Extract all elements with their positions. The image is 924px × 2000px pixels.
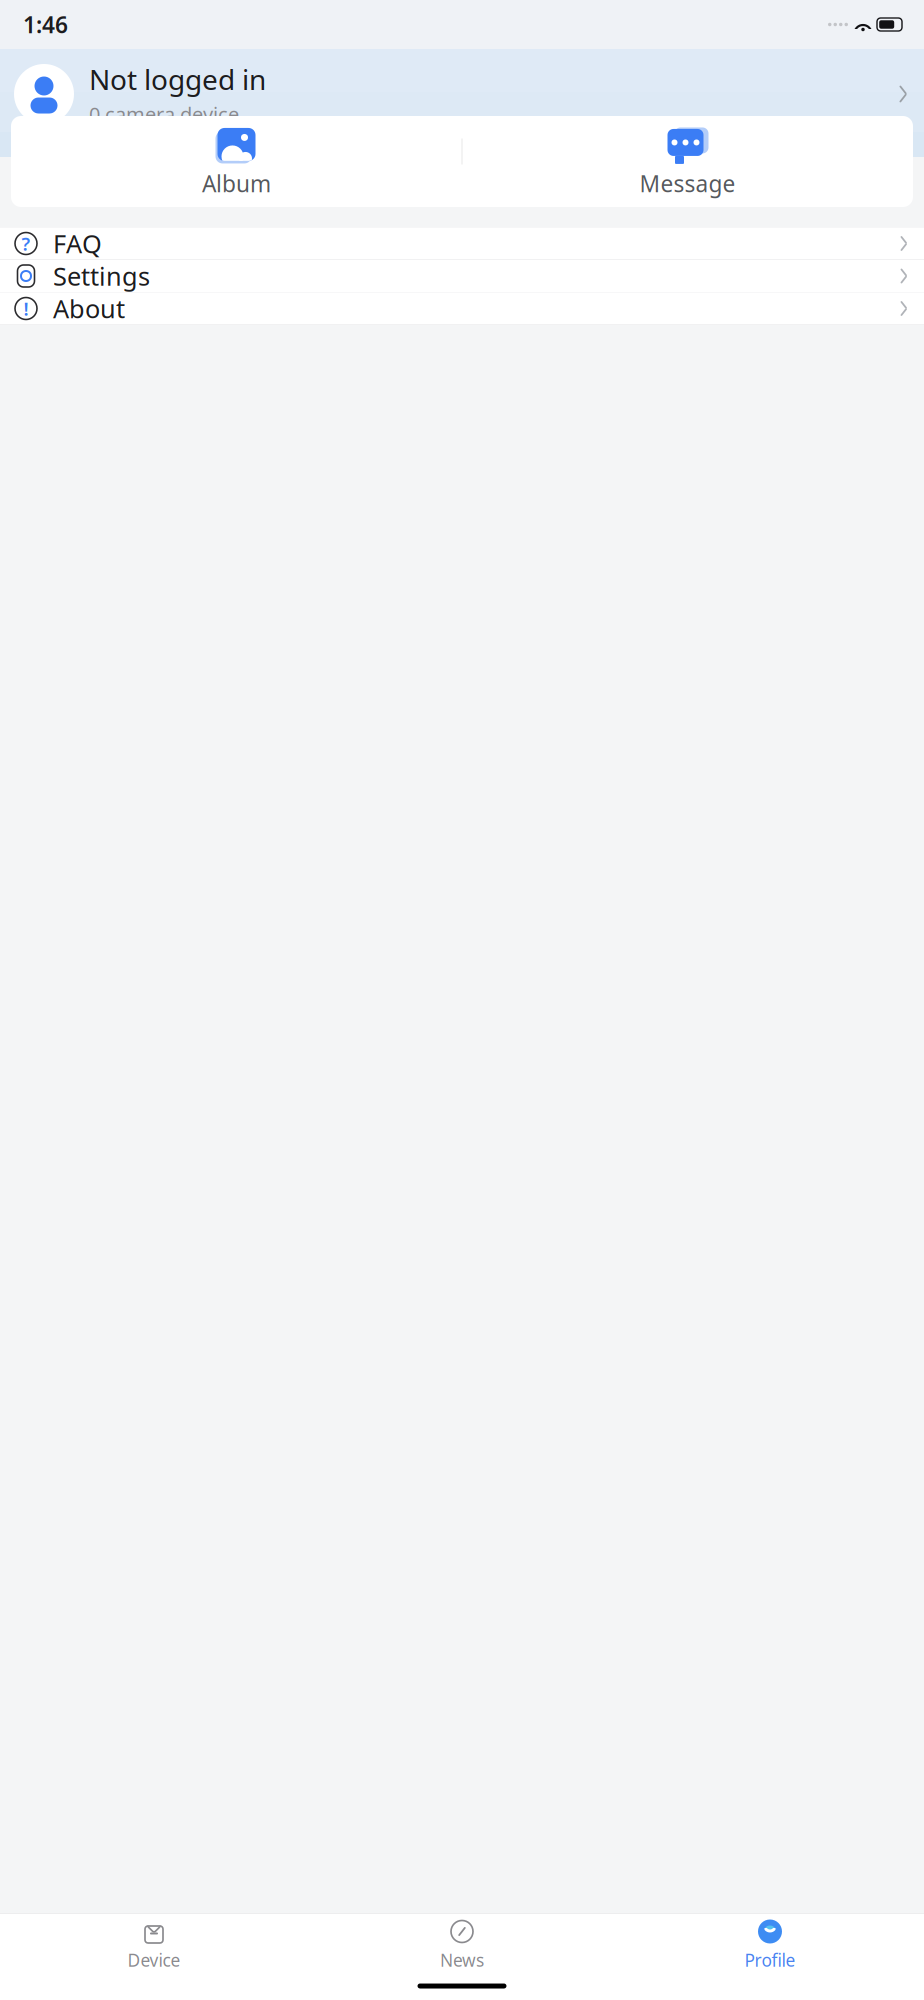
- button[interactable]: Settings: [0, 260, 924, 292]
- staticText: Settings: [53, 259, 150, 293]
- button[interactable]: Message: [462, 116, 913, 207]
- staticText: Album: [202, 168, 271, 198]
- button[interactable]: ?: [0, 227, 924, 260]
- button[interactable]: Not logged in: [0, 49, 924, 139]
- staticText: 1:46: [23, 9, 68, 39]
- staticText: Device: [127, 1948, 180, 1971]
- staticText: Message: [639, 168, 735, 198]
- button[interactable]: Profile: [616, 1918, 924, 1972]
- staticText: !: [23, 296, 28, 321]
- button[interactable]: Device: [0, 1918, 308, 1972]
- button[interactable]: !: [0, 292, 924, 325]
- staticText: News: [440, 1948, 484, 1971]
- staticText: Not logged in: [89, 61, 266, 98]
- staticText: 0 camera device: [89, 101, 239, 127]
- button[interactable]: Album: [11, 116, 462, 207]
- staticText: About: [53, 292, 125, 325]
- staticText: Profile: [744, 1948, 795, 1971]
- staticText: FAQ: [53, 227, 102, 260]
- staticText: ?: [21, 231, 30, 256]
- button[interactable]: News: [308, 1918, 616, 1972]
